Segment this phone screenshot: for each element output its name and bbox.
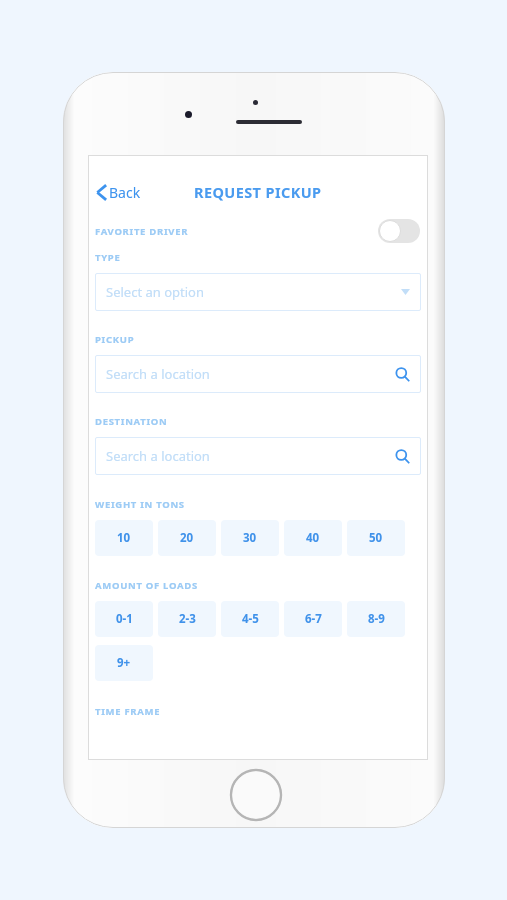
staticText: TIME FRAME (95, 705, 161, 718)
staticText: 40 (306, 530, 320, 546)
button[interactable]: 10 (95, 520, 153, 556)
staticText: 8-9 (368, 611, 385, 627)
staticText: DESTINATION (95, 415, 168, 428)
staticText: 9+ (117, 655, 131, 671)
staticText: Select an option (106, 283, 204, 301)
staticText: TYPE (95, 251, 121, 264)
staticText: 6-7 (305, 611, 322, 627)
button[interactable]: Search destination location (95, 437, 421, 475)
button[interactable]: 8-9 (347, 601, 405, 637)
staticText: 0-1 (116, 611, 133, 627)
staticText: 50 (369, 530, 383, 546)
staticText: PICKUP (95, 333, 135, 346)
button[interactable]: 40 (284, 520, 342, 556)
button[interactable]: 4-5 (221, 601, 279, 637)
button[interactable]: 20 (158, 520, 216, 556)
staticText: 10 (117, 530, 131, 546)
staticText: Search a location (106, 447, 210, 465)
staticText: AMOUNT OF LOADS (95, 579, 198, 592)
button[interactable]: Select type (95, 273, 421, 311)
button[interactable]: 0-1 (95, 601, 153, 637)
staticText: 4-5 (242, 611, 259, 627)
staticText: Search a location (106, 365, 210, 383)
staticText: 2-3 (179, 611, 196, 627)
staticText: 30 (243, 530, 257, 546)
button[interactable]: 30 (221, 520, 279, 556)
staticText: 20 (180, 530, 194, 546)
button[interactable]: 2-3 (158, 601, 216, 637)
button[interactable]: Search pickup location (95, 355, 421, 393)
staticText: WEIGHT IN TONS (95, 498, 185, 511)
button[interactable]: 6-7 (284, 601, 342, 637)
button[interactable]: 9+ (95, 645, 153, 681)
button[interactable]: Favorite driver toggle (378, 219, 420, 243)
staticText: Back (109, 183, 141, 202)
button[interactable]: 50 (347, 520, 405, 556)
button[interactable]: Back (93, 179, 144, 206)
staticText: FAVORITE DRIVER (95, 225, 189, 238)
staticText: REQUEST PICKUP (194, 182, 322, 202)
